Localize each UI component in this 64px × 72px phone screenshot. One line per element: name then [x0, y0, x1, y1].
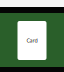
staticText: Card — [26, 37, 37, 44]
